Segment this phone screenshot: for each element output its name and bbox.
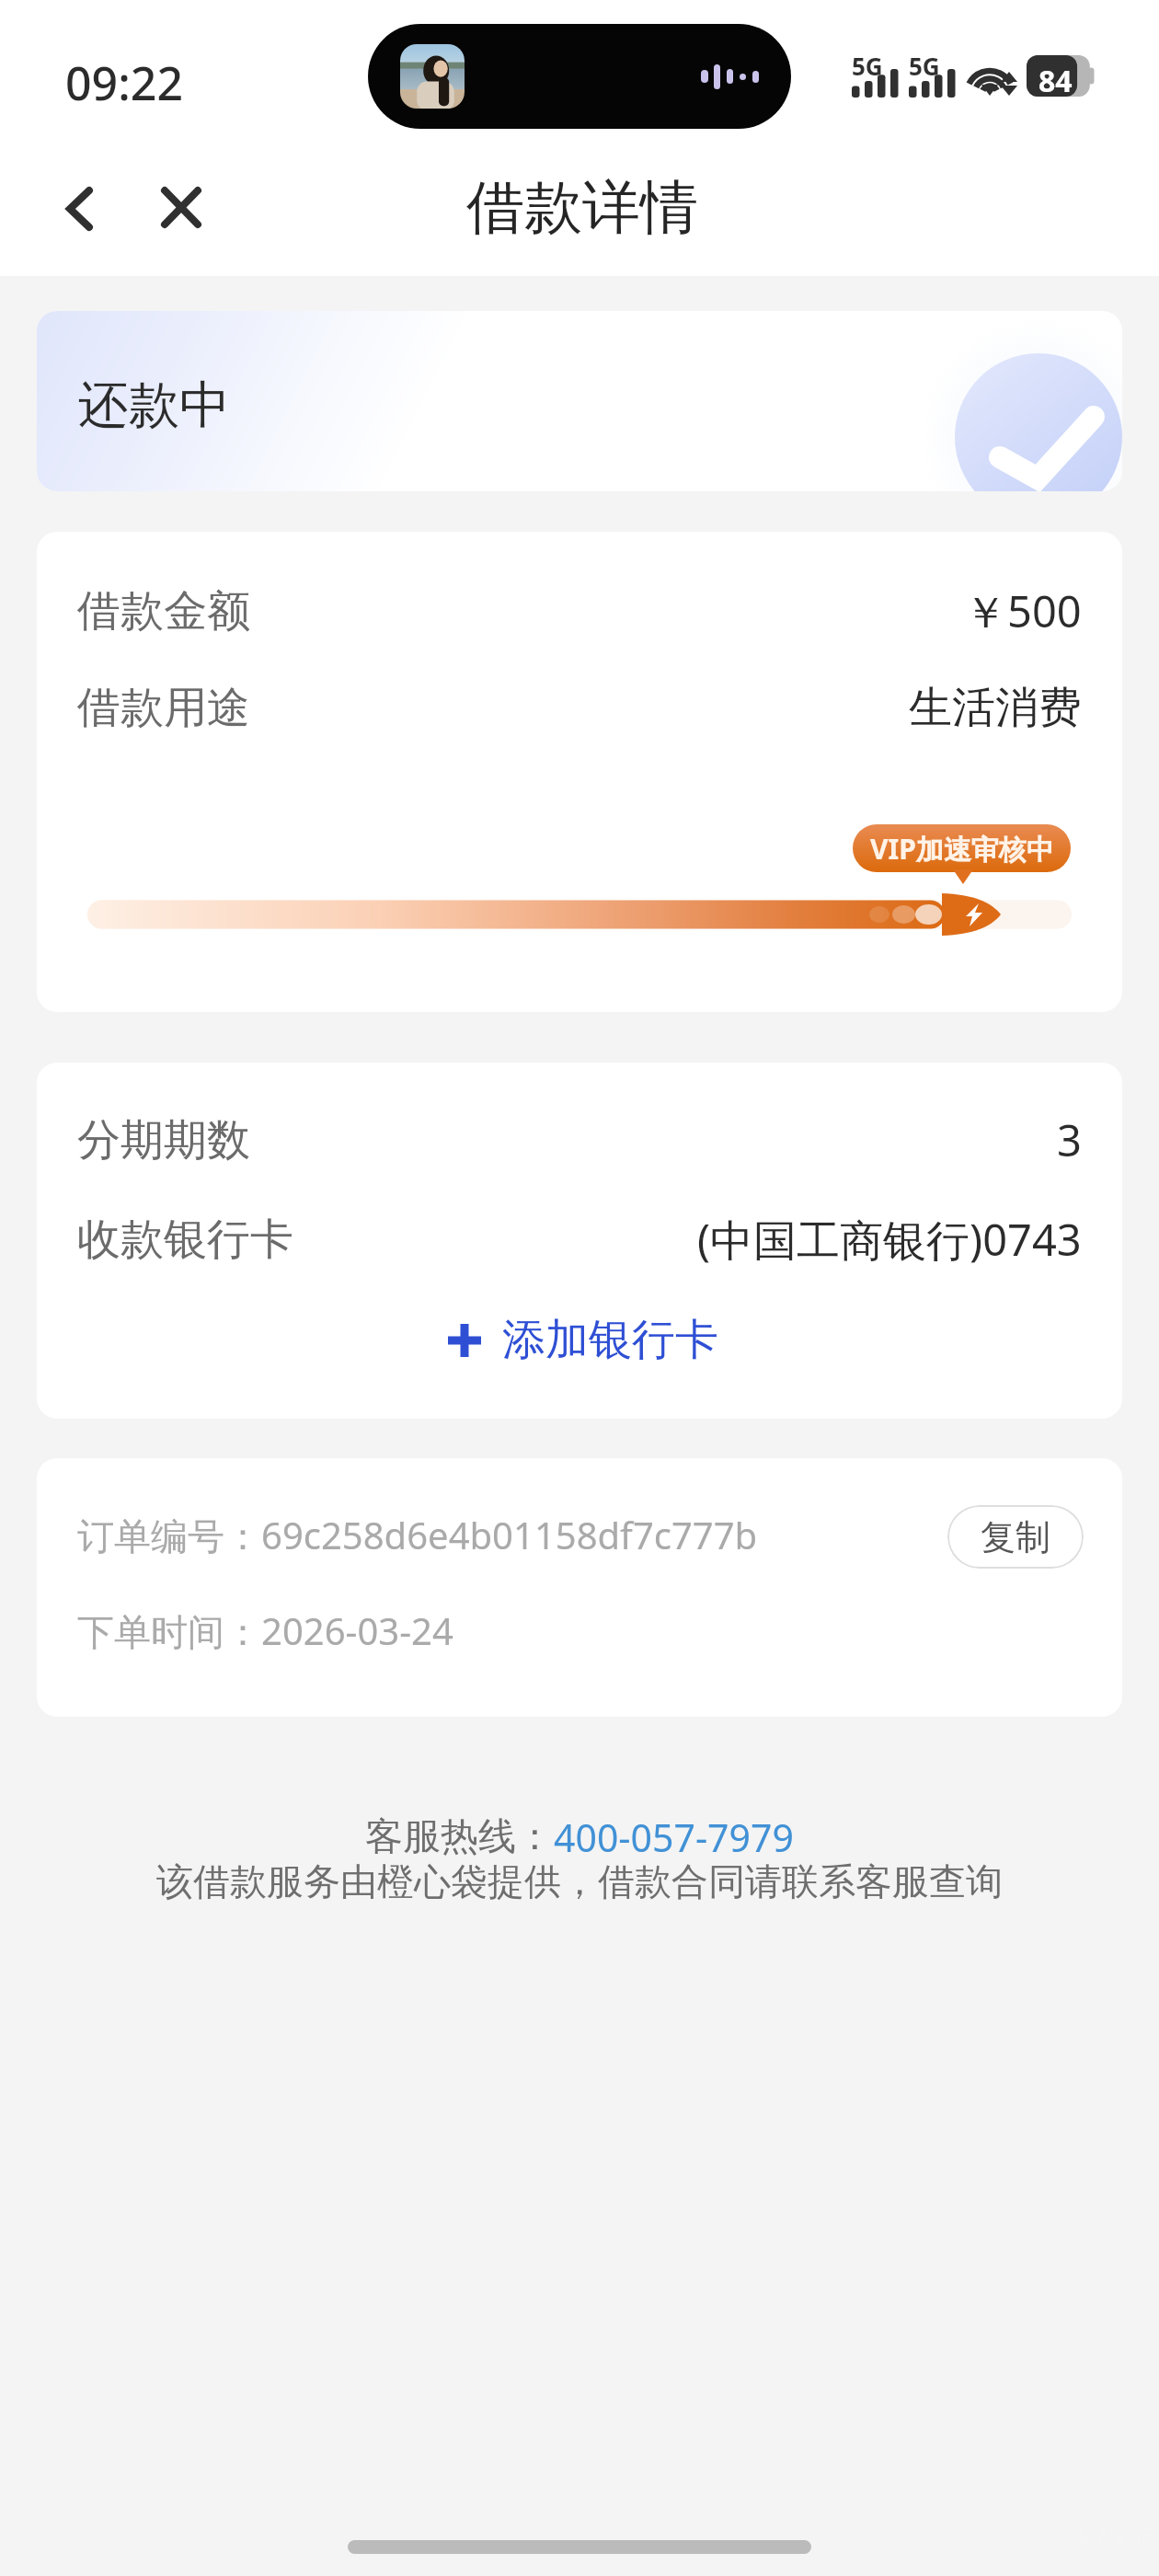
staticText: 生活消费 — [909, 681, 1082, 735]
staticText: 分期期数 — [77, 1113, 250, 1167]
staticText: 客服热线： — [365, 1813, 554, 1861]
button[interactable]: Close — [148, 174, 214, 240]
staticText: (中国工商银行)0743 — [697, 1210, 1082, 1269]
staticText: 还款中 — [78, 374, 230, 437]
staticText: 84 — [1039, 61, 1073, 101]
staticText: 09:22 — [65, 52, 183, 114]
staticText: 借款金额 — [77, 584, 250, 638]
staticText: 5G — [909, 50, 940, 82]
staticText: VIP加速审核中 — [870, 830, 1054, 868]
staticText: 复制 — [981, 1515, 1050, 1559]
staticText: ￥500 — [964, 581, 1082, 640]
button[interactable]: 添加银行卡 — [425, 1304, 740, 1376]
staticText: 5G — [852, 50, 883, 82]
staticText: 该借款服务由橙心袋提供，借款合同请联系客服查询 — [156, 1858, 1003, 1904]
staticText: 借款用途 — [77, 681, 250, 735]
staticText: 下单时间：2026-03-24 — [77, 1605, 453, 1656]
staticText: 添加银行卡 — [502, 1313, 718, 1367]
staticText: 收款银行卡 — [77, 1213, 293, 1267]
button[interactable]: Back — [46, 176, 112, 242]
staticText: 3 — [1057, 1110, 1082, 1169]
staticText: 订单编号：69c258d6e4b01158df7c777b — [77, 1510, 758, 1560]
button[interactable]: 复制 — [947, 1505, 1084, 1569]
staticText: 借款详情 — [466, 171, 698, 244]
button[interactable]: 400-057-7979 — [554, 1811, 794, 1863]
